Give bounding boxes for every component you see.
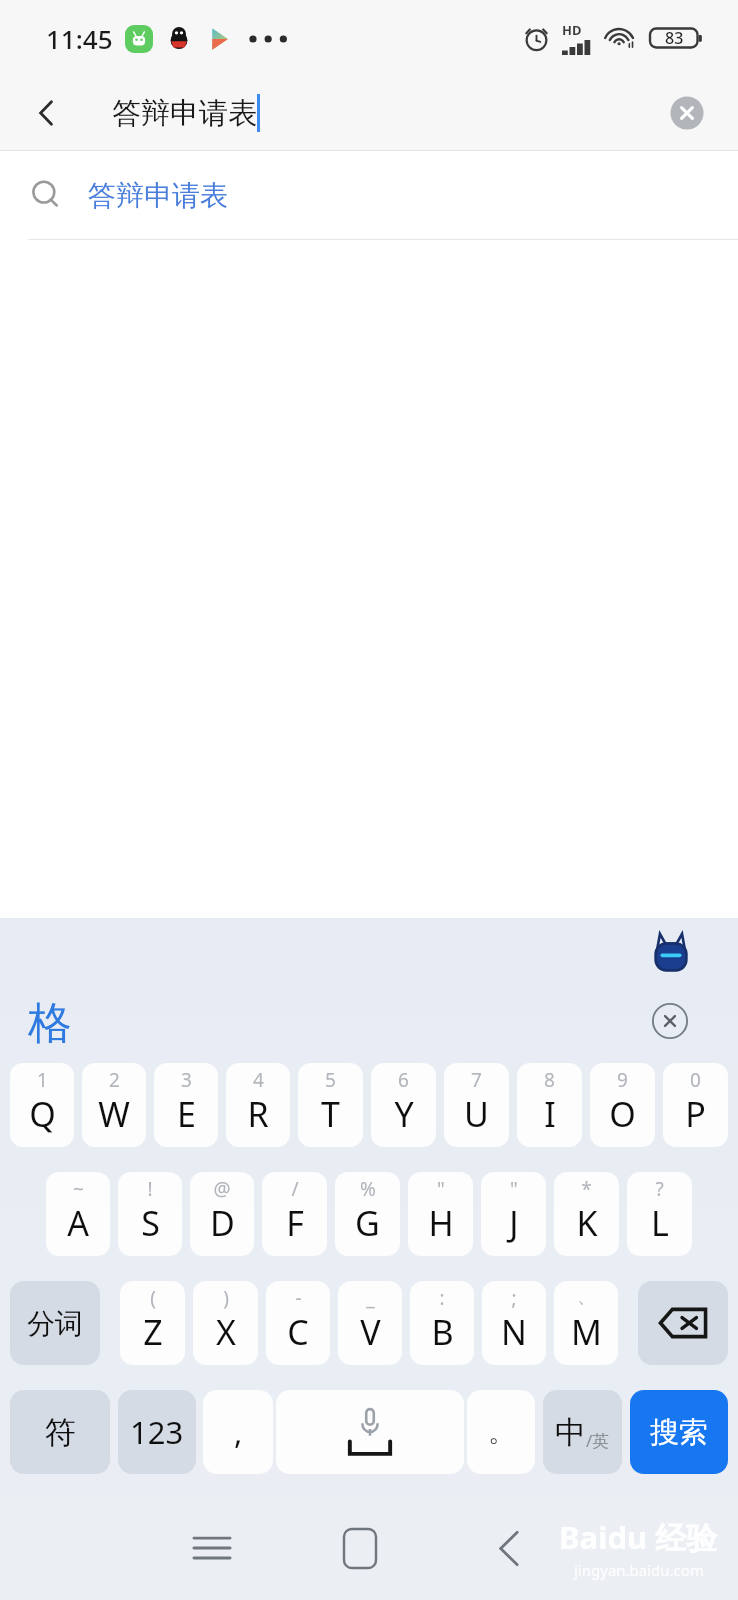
- button[interactable]: 5: [298, 1063, 363, 1147]
- button[interactable]: Back: [458, 1498, 558, 1598]
- button[interactable]: Back: [16, 82, 78, 144]
- staticText: !: [147, 1176, 153, 1202]
- staticText: Z: [143, 1309, 163, 1355]
- staticText: ~: [73, 1176, 84, 1202]
- button[interactable]: Space: [276, 1390, 464, 1474]
- button[interactable]: 0: [663, 1063, 728, 1147]
- button[interactable]: *: [554, 1172, 619, 1256]
- button[interactable]: /: [262, 1172, 327, 1256]
- button[interactable]: _: [338, 1281, 402, 1365]
- staticText: Q: [29, 1091, 56, 1137]
- button[interactable]: 分词: [10, 1281, 100, 1365]
- button[interactable]: ~: [46, 1172, 110, 1256]
- staticText: 分词: [27, 1306, 83, 1341]
- button[interactable]: %: [335, 1172, 400, 1256]
- staticText: *: [581, 1176, 592, 1202]
- staticText: 、: [577, 1285, 596, 1309]
- staticText: M: [571, 1309, 602, 1355]
- staticText: 7: [471, 1067, 482, 1093]
- button[interactable]: !: [118, 1172, 182, 1256]
- staticText: B: [431, 1309, 454, 1355]
- button[interactable]: 123: [118, 1390, 196, 1474]
- staticText: 123: [130, 1411, 184, 1453]
- button[interactable]: @: [190, 1172, 254, 1256]
- button[interactable]: 符: [10, 1390, 110, 1474]
- button[interactable]: 搜索: [630, 1390, 728, 1474]
- staticText: 6: [398, 1067, 409, 1093]
- staticText: 。: [488, 1416, 514, 1449]
- staticText: ": [437, 1176, 445, 1202]
- staticText: X: [216, 1309, 236, 1355]
- staticText: Y: [394, 1091, 414, 1137]
- staticText: /: [291, 1176, 299, 1202]
- staticText: ": [510, 1176, 518, 1202]
- button[interactable]: Recent apps: [162, 1498, 262, 1598]
- staticText: A: [67, 1200, 89, 1246]
- button[interactable]: ": [481, 1172, 546, 1256]
- staticText: 1: [37, 1067, 48, 1093]
- staticText: 答辩申请表: [112, 95, 257, 132]
- button[interactable]: ,: [203, 1390, 273, 1474]
- staticText: 符: [45, 1413, 76, 1452]
- staticText: L: [651, 1200, 669, 1246]
- staticText: K: [576, 1200, 598, 1246]
- button[interactable]: Home: [310, 1498, 410, 1598]
- button[interactable]: ;: [482, 1281, 546, 1365]
- button[interactable]: 3: [154, 1063, 218, 1147]
- staticText: HD: [562, 21, 582, 39]
- staticText: :: [439, 1285, 445, 1311]
- button[interactable]: 6: [371, 1063, 436, 1147]
- staticText: T: [321, 1091, 340, 1137]
- button[interactable]: 8: [517, 1063, 582, 1147]
- button[interactable]: Close candidates: [644, 995, 696, 1047]
- staticText: _: [366, 1285, 375, 1311]
- staticText: ): [223, 1285, 229, 1311]
- button[interactable]: 、: [554, 1281, 618, 1365]
- staticText: 搜索: [650, 1414, 708, 1451]
- staticText: ;: [511, 1285, 517, 1311]
- staticText: 3: [181, 1067, 192, 1093]
- staticText: (: [150, 1285, 156, 1311]
- button[interactable]: (: [120, 1281, 185, 1365]
- button[interactable]: Backspace: [638, 1281, 728, 1365]
- staticText: 2: [109, 1067, 120, 1093]
- staticText: E: [177, 1091, 196, 1137]
- button[interactable]: 。: [467, 1390, 535, 1474]
- staticText: 0: [690, 1067, 701, 1093]
- staticText: 5: [325, 1067, 336, 1093]
- button[interactable]: ): [193, 1281, 258, 1365]
- button[interactable]: Input method: [644, 928, 698, 982]
- staticText: C: [287, 1309, 309, 1355]
- staticText: -: [295, 1285, 302, 1311]
- staticText: 格: [28, 996, 72, 1051]
- button[interactable]: 4: [226, 1063, 290, 1147]
- staticText: @: [213, 1176, 231, 1202]
- staticText: 4: [253, 1067, 264, 1093]
- staticText: G: [355, 1200, 380, 1246]
- button[interactable]: 7: [444, 1063, 509, 1147]
- button[interactable]: 中: [543, 1390, 622, 1474]
- button[interactable]: Clear text: [658, 84, 716, 142]
- button[interactable]: ": [408, 1172, 473, 1256]
- staticText: D: [210, 1200, 235, 1246]
- staticText: R: [247, 1091, 269, 1137]
- staticText: F: [286, 1200, 304, 1246]
- staticText: H: [428, 1200, 454, 1246]
- staticText: Baidu 经验: [559, 1516, 718, 1558]
- button[interactable]: 答辩申请表: [0, 151, 738, 239]
- staticText: 83: [665, 27, 684, 49]
- staticText: 答辩申请表: [88, 178, 228, 213]
- button[interactable]: ?: [627, 1172, 692, 1256]
- staticText: /英: [586, 1429, 610, 1452]
- staticText: %: [360, 1176, 376, 1202]
- staticText: J: [509, 1200, 519, 1246]
- staticText: W: [98, 1091, 130, 1137]
- button[interactable]: 2: [82, 1063, 146, 1147]
- staticText: U: [464, 1091, 489, 1137]
- staticText: S: [141, 1200, 160, 1246]
- button[interactable]: -: [266, 1281, 330, 1365]
- staticText: ,: [234, 1411, 243, 1453]
- button[interactable]: 1: [10, 1063, 74, 1147]
- button[interactable]: :: [410, 1281, 474, 1365]
- button[interactable]: 9: [590, 1063, 655, 1147]
